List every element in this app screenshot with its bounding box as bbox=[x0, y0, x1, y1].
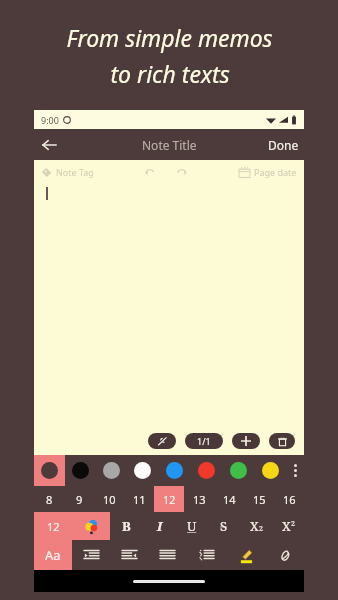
button[interactable]: Back bbox=[34, 130, 64, 160]
staticText: X bbox=[282, 517, 291, 535]
staticText: Done bbox=[268, 137, 299, 153]
button[interactable]: 14 bbox=[214, 486, 244, 512]
button[interactable]: More colours bbox=[286, 455, 304, 486]
staticText: 16 bbox=[283, 492, 296, 507]
staticText: B bbox=[122, 517, 131, 535]
staticText: to rich texts bbox=[110, 58, 230, 89]
button[interactable]: 9 bbox=[64, 486, 94, 512]
button[interactable]: 13 bbox=[184, 486, 214, 512]
button[interactable]: I bbox=[143, 512, 176, 540]
button[interactable]: Delete bbox=[269, 433, 295, 449]
staticText: 11 bbox=[133, 492, 146, 507]
button[interactable]: Undo bbox=[142, 164, 158, 180]
button[interactable]: Mute bbox=[148, 433, 176, 449]
button[interactable]: 8 bbox=[34, 486, 64, 512]
button[interactable]: Colour 0 bbox=[34, 455, 65, 486]
button[interactable]: Highlight bbox=[226, 540, 265, 570]
button[interactable]: Done bbox=[263, 133, 304, 157]
staticText: Aa bbox=[45, 546, 61, 564]
staticText: 9 bbox=[76, 492, 83, 507]
button[interactable]: Page date bbox=[239, 166, 297, 178]
staticText: From simple memos bbox=[66, 22, 273, 53]
staticText: 10 bbox=[103, 492, 116, 507]
button[interactable]: 1/1 bbox=[185, 433, 223, 449]
button[interactable]: Colour 2 bbox=[96, 455, 127, 486]
staticText: 2 bbox=[259, 524, 263, 534]
button[interactable]: Note Tag bbox=[41, 166, 94, 178]
staticText: 9:00 bbox=[41, 114, 59, 126]
staticText: 12 bbox=[163, 492, 176, 507]
button[interactable]: Colour 7 bbox=[254, 455, 286, 486]
button[interactable]: Colour 6 bbox=[222, 455, 254, 486]
staticText: X bbox=[250, 517, 259, 535]
button[interactable]: 10 bbox=[94, 486, 124, 512]
staticText: 8 bbox=[46, 492, 53, 507]
staticText: S bbox=[220, 517, 228, 535]
staticText: 14 bbox=[223, 492, 236, 507]
button[interactable]: 11 bbox=[124, 486, 154, 512]
button[interactable]: S bbox=[208, 512, 240, 540]
button[interactable]: Redo bbox=[174, 164, 190, 180]
staticText: Page date bbox=[254, 166, 297, 178]
button[interactable]: 16 bbox=[274, 486, 304, 512]
staticText: U bbox=[187, 517, 197, 535]
staticText: I bbox=[157, 517, 163, 535]
staticText: 13 bbox=[193, 492, 206, 507]
staticText: Note Title bbox=[142, 137, 197, 153]
button[interactable]: X bbox=[272, 512, 304, 540]
button[interactable]: Colour 4 bbox=[158, 455, 190, 486]
staticText: 1/1 bbox=[197, 435, 211, 447]
button[interactable]: 12 bbox=[154, 486, 184, 512]
button[interactable]: Indent bbox=[72, 540, 110, 570]
staticText: 15 bbox=[253, 492, 266, 507]
button[interactable]: Add page bbox=[232, 433, 260, 449]
button[interactable]: Align bbox=[148, 540, 187, 570]
button[interactable]: Colour 3 bbox=[127, 455, 158, 486]
button[interactable]: X bbox=[240, 512, 272, 540]
button[interactable]: Attach bbox=[265, 540, 304, 570]
button[interactable]: 15 bbox=[244, 486, 274, 512]
staticText: Note Tag bbox=[56, 166, 94, 178]
staticText: 2 bbox=[291, 519, 295, 529]
staticText: 12 bbox=[47, 519, 60, 534]
button[interactable]: Colour 1 bbox=[65, 455, 96, 486]
button[interactable]: Colour 5 bbox=[190, 455, 222, 486]
button[interactable]: List bbox=[187, 540, 226, 570]
button[interactable]: Aa bbox=[34, 540, 72, 570]
button[interactable]: Text colour bbox=[72, 512, 110, 540]
button[interactable]: Outdent bbox=[110, 540, 148, 570]
button[interactable]: 12 bbox=[34, 512, 72, 540]
button[interactable]: B bbox=[110, 512, 143, 540]
button[interactable]: U bbox=[176, 512, 208, 540]
